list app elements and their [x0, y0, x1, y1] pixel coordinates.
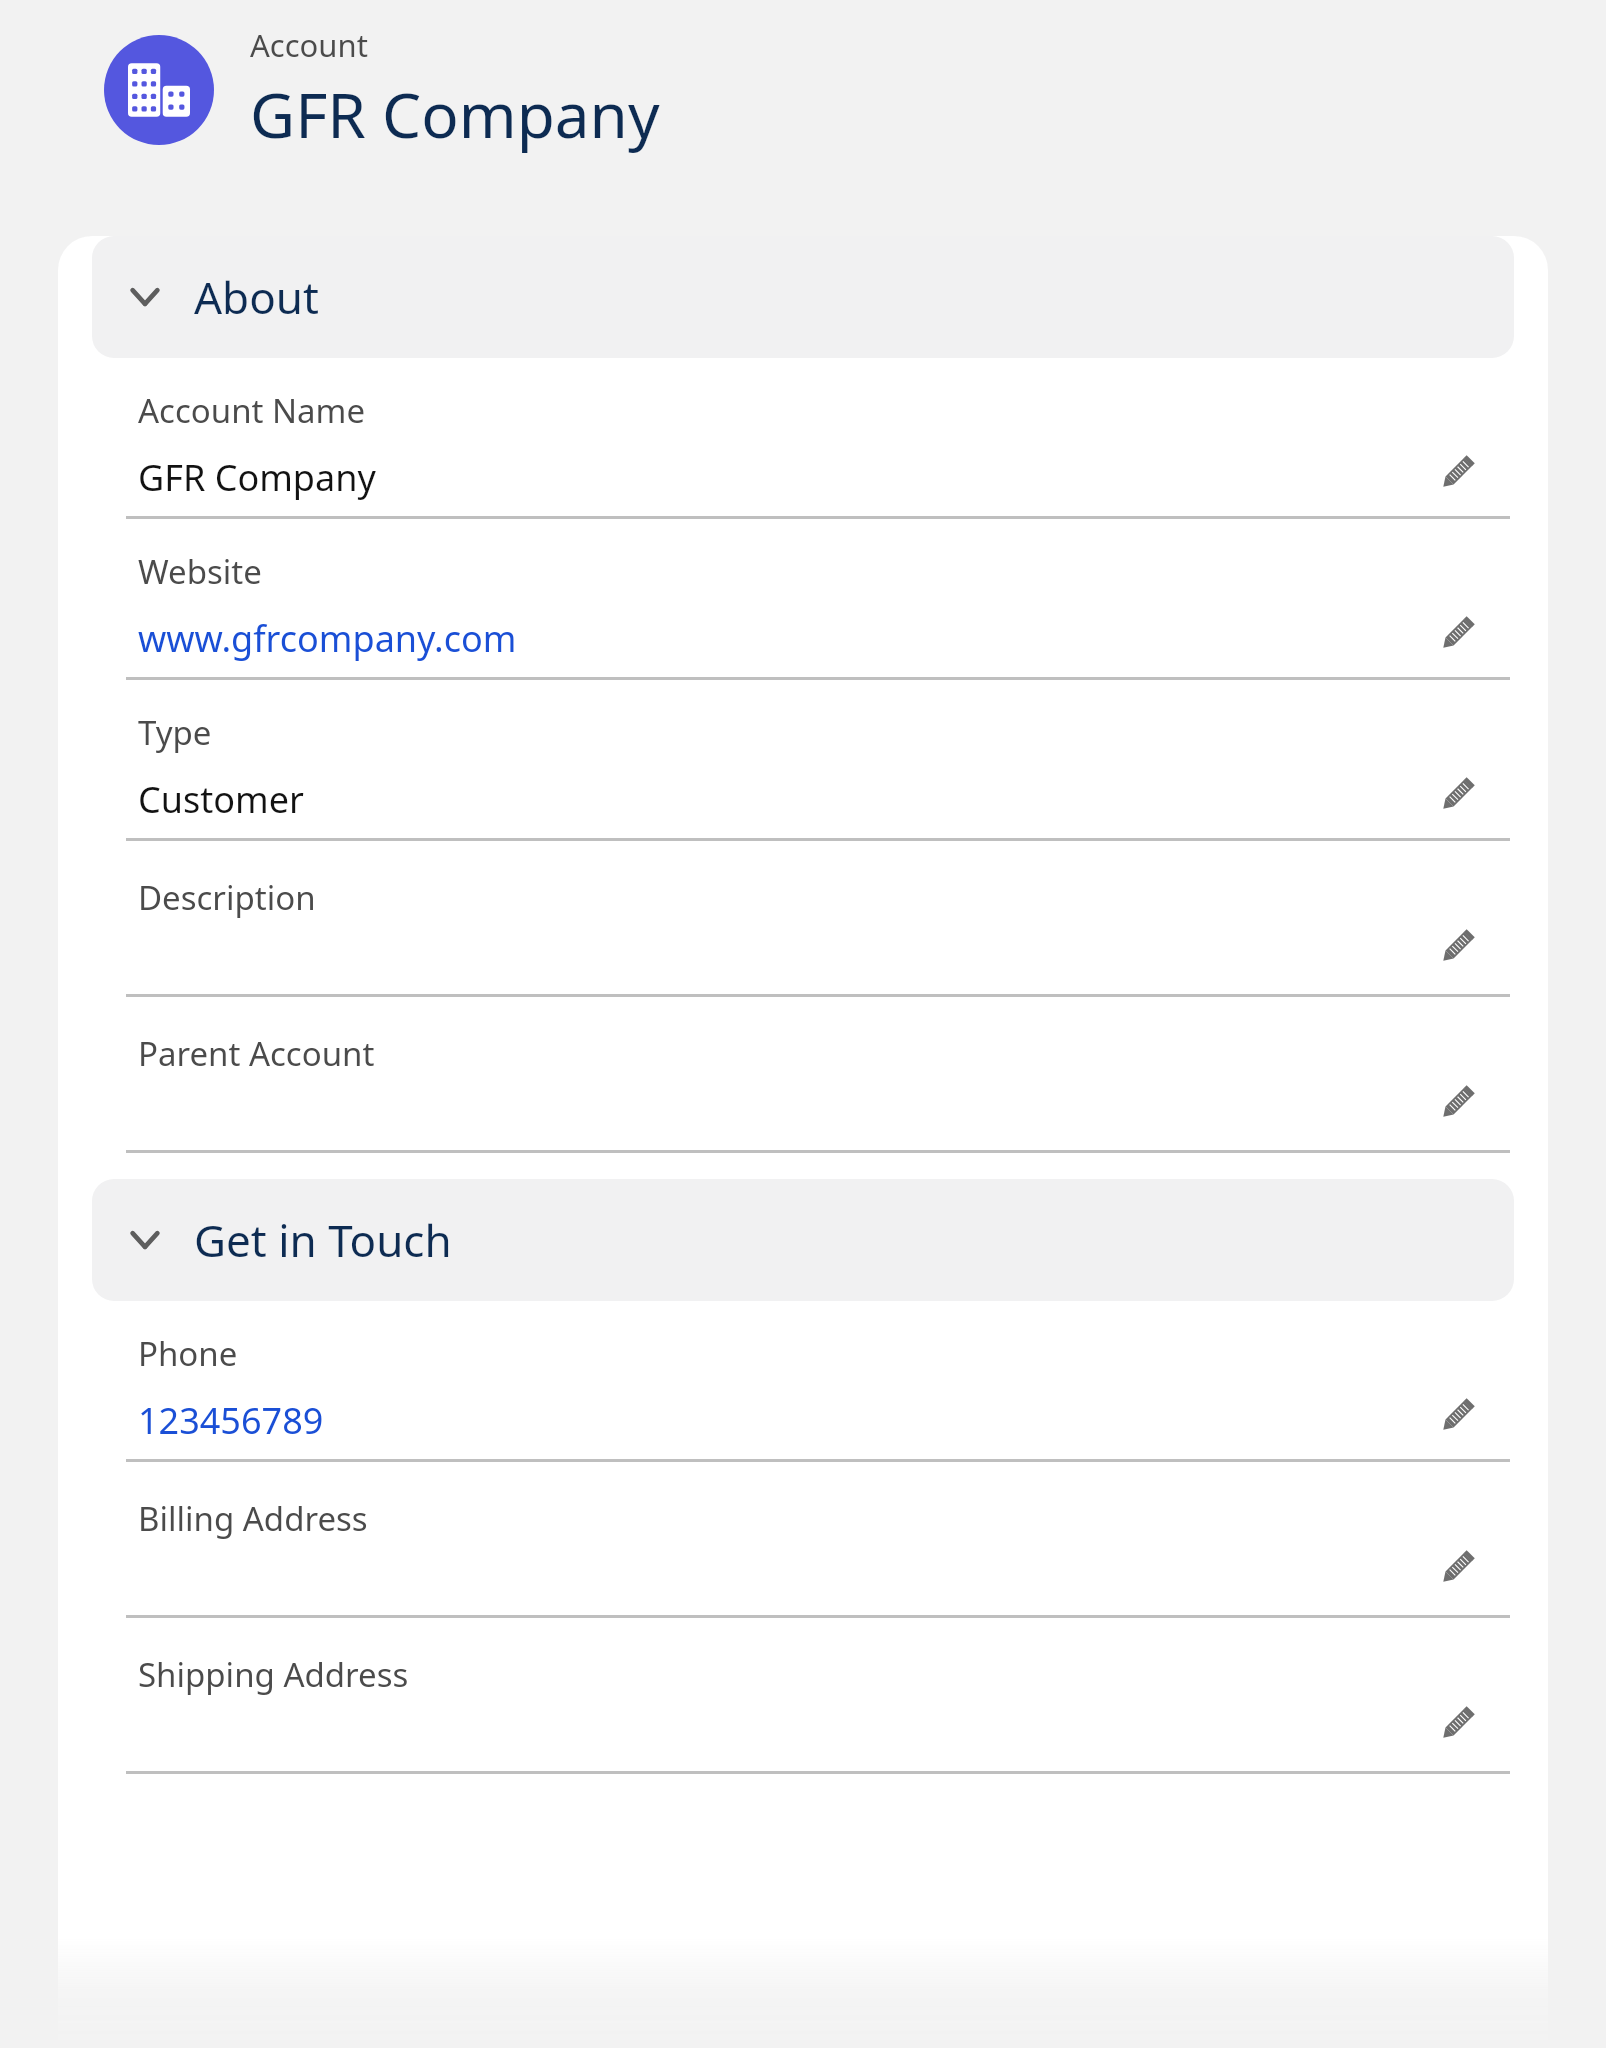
other: Account avatar — [104, 35, 214, 145]
button[interactable]: Billing Address — [58, 1462, 1548, 1618]
staticText: Account Name — [138, 388, 366, 433]
button[interactable]: Account avatar — [104, 24, 1582, 156]
staticText: Website — [138, 549, 262, 594]
staticText: Customer — [138, 775, 304, 824]
staticText: Shipping Address — [138, 1652, 409, 1697]
staticText: Get in Touch — [194, 1210, 452, 1270]
staticText: Parent Account — [138, 1031, 375, 1076]
button[interactable]: Phone — [58, 1301, 1548, 1462]
button[interactable]: Edit Description — [1428, 918, 1486, 976]
button[interactable]: Edit Type — [1428, 766, 1486, 824]
staticText: Billing Address — [138, 1496, 368, 1541]
button[interactable]: Description — [58, 841, 1548, 997]
staticText: About — [194, 267, 319, 327]
button[interactable]: Edit Parent Account — [1428, 1074, 1486, 1132]
button[interactable]: Account Name — [58, 358, 1548, 519]
button[interactable]: Type — [58, 680, 1548, 841]
button[interactable]: About — [92, 236, 1514, 358]
button[interactable]: Parent Account — [58, 997, 1548, 1153]
button[interactable]: Shipping Address — [58, 1618, 1548, 1774]
button[interactable]: Website — [58, 519, 1548, 680]
staticText: Phone — [138, 1331, 238, 1376]
button[interactable]: Get in Touch — [92, 1179, 1514, 1301]
button[interactable]: Edit Phone — [1428, 1387, 1486, 1445]
staticText: Description — [138, 875, 316, 920]
button[interactable]: Edit Account Name — [1428, 444, 1486, 502]
staticText: Account — [250, 24, 368, 66]
staticText: GFR Company — [138, 453, 376, 502]
button[interactable]: Edit Billing Address — [1428, 1539, 1486, 1597]
staticText: www.gfrcompany.com — [138, 614, 517, 663]
button[interactable]: Edit Shipping Address — [1428, 1695, 1486, 1753]
staticText: 123456789 — [138, 1396, 324, 1445]
button[interactable]: Edit Website — [1428, 605, 1486, 663]
staticText: Type — [138, 710, 212, 755]
staticText: GFR Company — [250, 72, 660, 156]
